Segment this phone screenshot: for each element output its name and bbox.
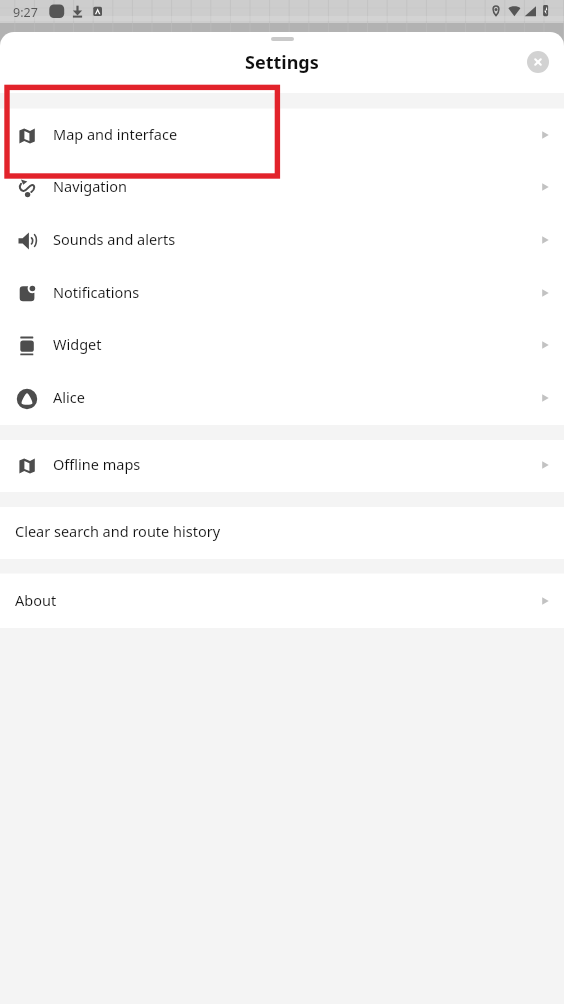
button[interactable]: Close	[527, 51, 549, 73]
staticText: Offline maps	[53, 454, 141, 474]
button[interactable]: Alice	[0, 372, 564, 425]
staticText: Clear search and route history	[15, 521, 221, 541]
button[interactable]: Map and interface	[0, 109, 564, 162]
button[interactable]: Notifications	[0, 267, 564, 320]
staticText: About	[15, 590, 57, 610]
staticText: Settings	[245, 50, 319, 75]
staticText: 9:27	[13, 4, 38, 21]
staticText: Notifications	[53, 282, 140, 302]
button[interactable]: Clear search and route history	[0, 507, 564, 559]
button[interactable]: Navigation	[0, 161, 564, 214]
staticText: Map and interface	[53, 124, 178, 144]
staticText: Widget	[53, 334, 102, 354]
button[interactable]: About	[0, 574, 564, 628]
button[interactable]: Widget	[0, 319, 564, 372]
staticText: Sounds and alerts	[53, 229, 176, 249]
button[interactable]: Sounds and alerts	[0, 214, 564, 267]
button[interactable]: Offline maps	[0, 440, 564, 492]
staticText: Navigation	[53, 176, 128, 196]
staticText: Alice	[53, 387, 85, 407]
